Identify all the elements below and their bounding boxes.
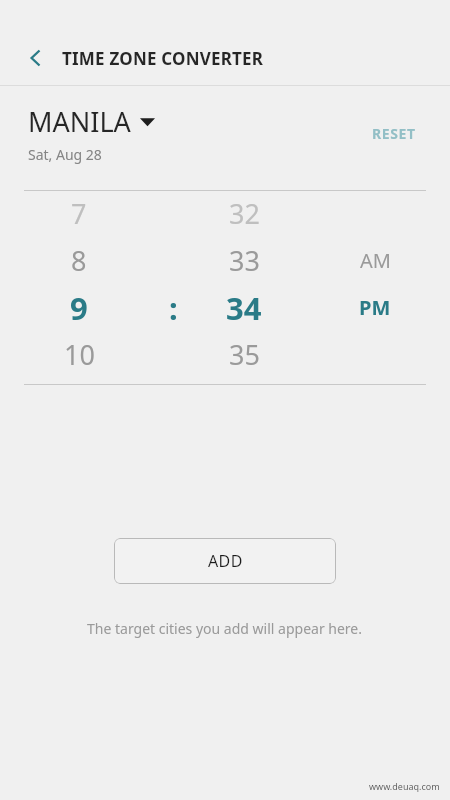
staticText: TIME ZONE CONVERTER xyxy=(62,47,264,70)
staticText: 9 xyxy=(70,287,88,329)
staticText: 35 xyxy=(229,336,260,373)
staticText: 33 xyxy=(229,242,260,279)
button[interactable]: 7 xyxy=(0,190,158,237)
staticText: 34 xyxy=(226,287,262,329)
staticText: PM xyxy=(359,294,391,321)
button[interactable]: 34 xyxy=(188,284,300,331)
button[interactable]: PM xyxy=(300,284,450,331)
button[interactable]: AM xyxy=(300,237,450,284)
button[interactable]: 32 xyxy=(188,190,300,237)
button[interactable]: 33 xyxy=(188,237,300,284)
staticText: AM xyxy=(360,247,391,274)
button[interactable]: RESET xyxy=(368,116,420,151)
staticText: ADD xyxy=(208,550,243,572)
button[interactable]: 35 xyxy=(188,331,300,378)
staticText: MANILA xyxy=(28,103,131,140)
staticText: : xyxy=(169,287,178,329)
staticText: 8 xyxy=(71,242,87,279)
button[interactable]: 10 xyxy=(0,331,158,378)
button[interactable]: 9 xyxy=(0,284,158,331)
staticText: www.deuaq.com xyxy=(369,780,440,792)
staticText: The target cities you add will appear he… xyxy=(87,619,363,638)
staticText: 10 xyxy=(64,336,95,373)
button[interactable]: MANILA xyxy=(28,103,368,164)
staticText: RESET xyxy=(372,124,416,143)
button[interactable]: 8 xyxy=(0,237,158,284)
staticText: 32 xyxy=(229,195,260,232)
button[interactable]: Back xyxy=(14,36,58,80)
staticText: Sat, Aug 28 xyxy=(28,145,102,164)
button[interactable]: ADD xyxy=(114,538,336,584)
staticText: 7 xyxy=(71,195,87,232)
